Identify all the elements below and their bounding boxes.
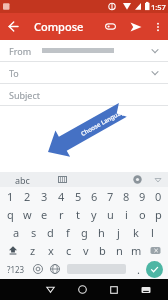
button[interactable]: 5	[70, 187, 86, 205]
button[interactable]: 2	[19, 187, 36, 205]
staticText: l	[151, 225, 154, 240]
staticText: Subject	[9, 89, 41, 101]
button[interactable]: Switch language	[46, 259, 63, 279]
button[interactable]: f	[59, 223, 76, 241]
staticText: z	[30, 243, 36, 258]
button[interactable]: .	[130, 259, 146, 279]
button[interactable]: w	[19, 205, 36, 223]
staticText: u	[107, 207, 114, 222]
button[interactable]: n	[111, 241, 128, 259]
staticText: 5	[75, 189, 82, 204]
staticText: v	[83, 243, 89, 258]
button[interactable]: y	[86, 205, 102, 223]
button[interactable]: Home	[66, 279, 98, 300]
button[interactable]: 6	[86, 187, 102, 205]
button[interactable]: Send	[123, 14, 148, 39]
staticText: 1	[7, 189, 14, 204]
staticText: f	[66, 225, 70, 240]
button[interactable]: u	[102, 205, 118, 223]
staticText: h	[98, 225, 105, 240]
staticText: m	[131, 243, 142, 258]
button[interactable]: Attach file	[98, 14, 123, 39]
button[interactable]: j	[110, 223, 127, 241]
button[interactable]: Recent apps	[98, 279, 130, 300]
staticText: i	[125, 207, 128, 222]
staticText: 7	[107, 189, 114, 204]
button[interactable]: 0	[150, 187, 166, 205]
button[interactable]: a	[7, 223, 25, 241]
staticText: To	[9, 67, 19, 79]
staticText: g	[81, 225, 88, 240]
staticText: o	[139, 207, 146, 222]
staticText: 6	[91, 189, 98, 204]
button[interactable]: 7	[102, 187, 118, 205]
staticText: .	[137, 262, 140, 277]
button[interactable]: Expand	[148, 172, 168, 187]
button[interactable]: Back	[34, 279, 66, 300]
staticText: p	[155, 207, 162, 222]
staticText: y	[91, 207, 97, 222]
button[interactable]: At sign	[29, 259, 46, 279]
staticText: Compose	[34, 19, 84, 34]
button[interactable]: o	[134, 205, 150, 223]
staticText: From	[9, 45, 32, 57]
staticText: e	[41, 207, 48, 222]
button[interactable]: v	[77, 241, 94, 259]
staticText: 4	[58, 189, 65, 204]
button[interactable]: ?123	[3, 259, 29, 279]
button[interactable]: 4	[53, 187, 70, 205]
button[interactable]: 3	[36, 187, 53, 205]
button[interactable]: 1	[2, 187, 19, 205]
staticText: r	[59, 207, 64, 222]
button[interactable]: To	[0, 62, 168, 83]
button[interactable]: Done	[146, 261, 163, 278]
button[interactable]: k	[127, 223, 144, 241]
button[interactable]: z	[24, 241, 42, 259]
button[interactable]: x	[42, 241, 60, 259]
button[interactable]: e	[36, 205, 53, 223]
staticText: n	[116, 243, 123, 258]
staticText: d	[47, 225, 54, 240]
staticText: a	[13, 225, 20, 240]
button[interactable]: Subject	[0, 84, 168, 105]
staticText: x	[48, 243, 54, 258]
button[interactable]: d	[42, 223, 59, 241]
button[interactable]: Hide keyboard	[130, 279, 162, 300]
button[interactable]: abc	[0, 172, 44, 187]
button[interactable]: l	[144, 223, 161, 241]
staticText: abc	[15, 174, 30, 186]
button[interactable]: 8	[118, 187, 134, 205]
button[interactable]: 9	[134, 187, 150, 205]
button[interactable]: i	[118, 205, 134, 223]
button[interactable]: q	[2, 205, 19, 223]
button[interactable]: b	[94, 241, 111, 259]
staticText: c	[66, 243, 72, 258]
button[interactable]: c	[60, 241, 77, 259]
button[interactable]: p	[150, 205, 166, 223]
staticText: 2	[24, 189, 31, 204]
button[interactable]: t	[70, 205, 86, 223]
button[interactable]: More options	[148, 17, 168, 37]
staticText: ?123	[7, 264, 25, 275]
button[interactable]: m	[128, 241, 145, 259]
button[interactable]: Back	[0, 13, 27, 40]
button[interactable]: Shift	[2, 241, 24, 259]
staticText: q	[7, 207, 14, 222]
button[interactable]: g	[76, 223, 93, 241]
staticText: j	[117, 225, 120, 240]
button[interactable]: h	[93, 223, 110, 241]
staticText: s	[31, 225, 37, 240]
staticText: b	[99, 243, 106, 258]
button[interactable]: Help	[126, 172, 148, 187]
staticText: w	[23, 207, 32, 222]
staticText: t	[76, 207, 80, 222]
button[interactable]: Choose language	[44, 172, 80, 187]
staticText: k	[133, 225, 139, 240]
staticText: 1:57	[151, 2, 166, 12]
button[interactable]: Backspace	[145, 241, 166, 259]
staticText: Choose Language	[79, 106, 129, 138]
button[interactable]: From	[0, 40, 168, 61]
button[interactable]: s	[25, 223, 42, 241]
button[interactable]: r	[53, 205, 70, 223]
